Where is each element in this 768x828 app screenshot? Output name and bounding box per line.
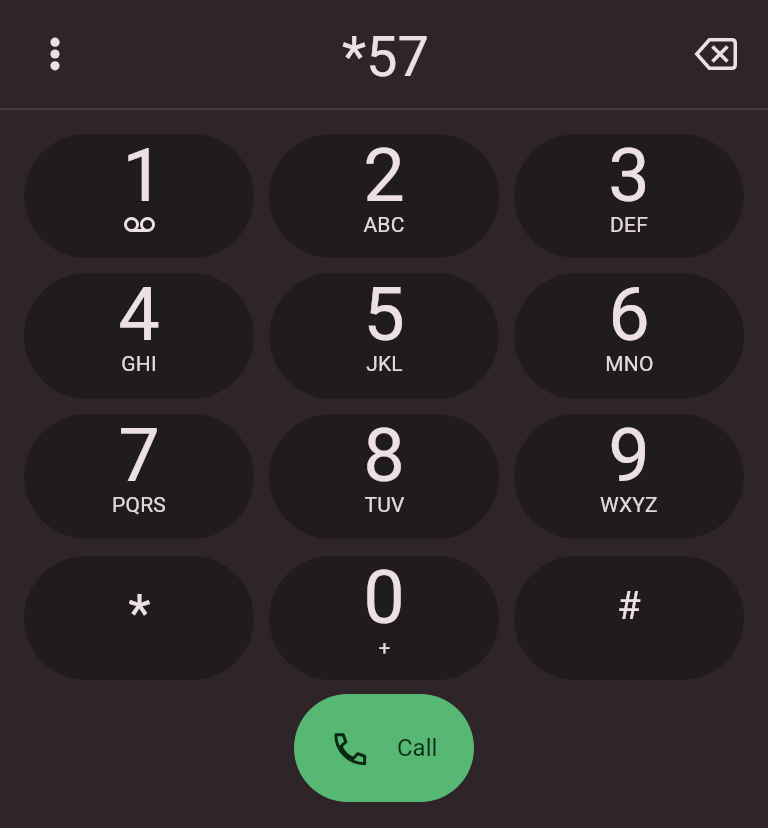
button[interactable]: Call	[294, 694, 474, 802]
staticText: ABC	[363, 213, 405, 238]
staticText: 1	[122, 134, 164, 219]
staticText: 6	[608, 273, 650, 358]
button[interactable]: 7	[24, 414, 254, 539]
staticText: 9	[608, 414, 650, 499]
staticText: MNO	[605, 352, 654, 377]
button[interactable]: 0	[269, 556, 499, 680]
staticText: *57	[342, 24, 430, 90]
button[interactable]: More options	[21, 20, 89, 88]
button[interactable]: #	[514, 556, 744, 680]
button[interactable]: 5	[269, 273, 499, 399]
staticText: JKL	[366, 352, 403, 377]
staticText: 2	[363, 134, 405, 219]
staticText: WXYZ	[600, 493, 658, 518]
staticText: PQRS	[112, 493, 166, 518]
button[interactable]: *	[24, 556, 254, 680]
staticText: 3	[608, 134, 650, 219]
button[interactable]: 6	[514, 273, 744, 399]
staticText: +	[378, 636, 391, 661]
staticText: Call	[397, 734, 438, 762]
staticText: TUV	[364, 493, 405, 518]
button[interactable]: 1	[24, 134, 254, 258]
button[interactable]: Backspace	[682, 20, 750, 88]
staticText: GHI	[121, 352, 157, 377]
staticText: 5	[363, 273, 405, 358]
button[interactable]: 8	[269, 414, 499, 539]
button[interactable]: 3	[514, 134, 744, 258]
button[interactable]: 2	[269, 134, 499, 258]
staticText: 0	[363, 556, 405, 641]
staticText: DEF	[610, 213, 648, 238]
button[interactable]: 9	[514, 414, 744, 539]
staticText: #	[617, 584, 641, 629]
staticText: 7	[118, 414, 160, 499]
staticText: 4	[118, 273, 160, 358]
staticText: 8	[363, 414, 405, 499]
button[interactable]: 4	[24, 273, 254, 399]
staticText: *	[128, 583, 151, 644]
